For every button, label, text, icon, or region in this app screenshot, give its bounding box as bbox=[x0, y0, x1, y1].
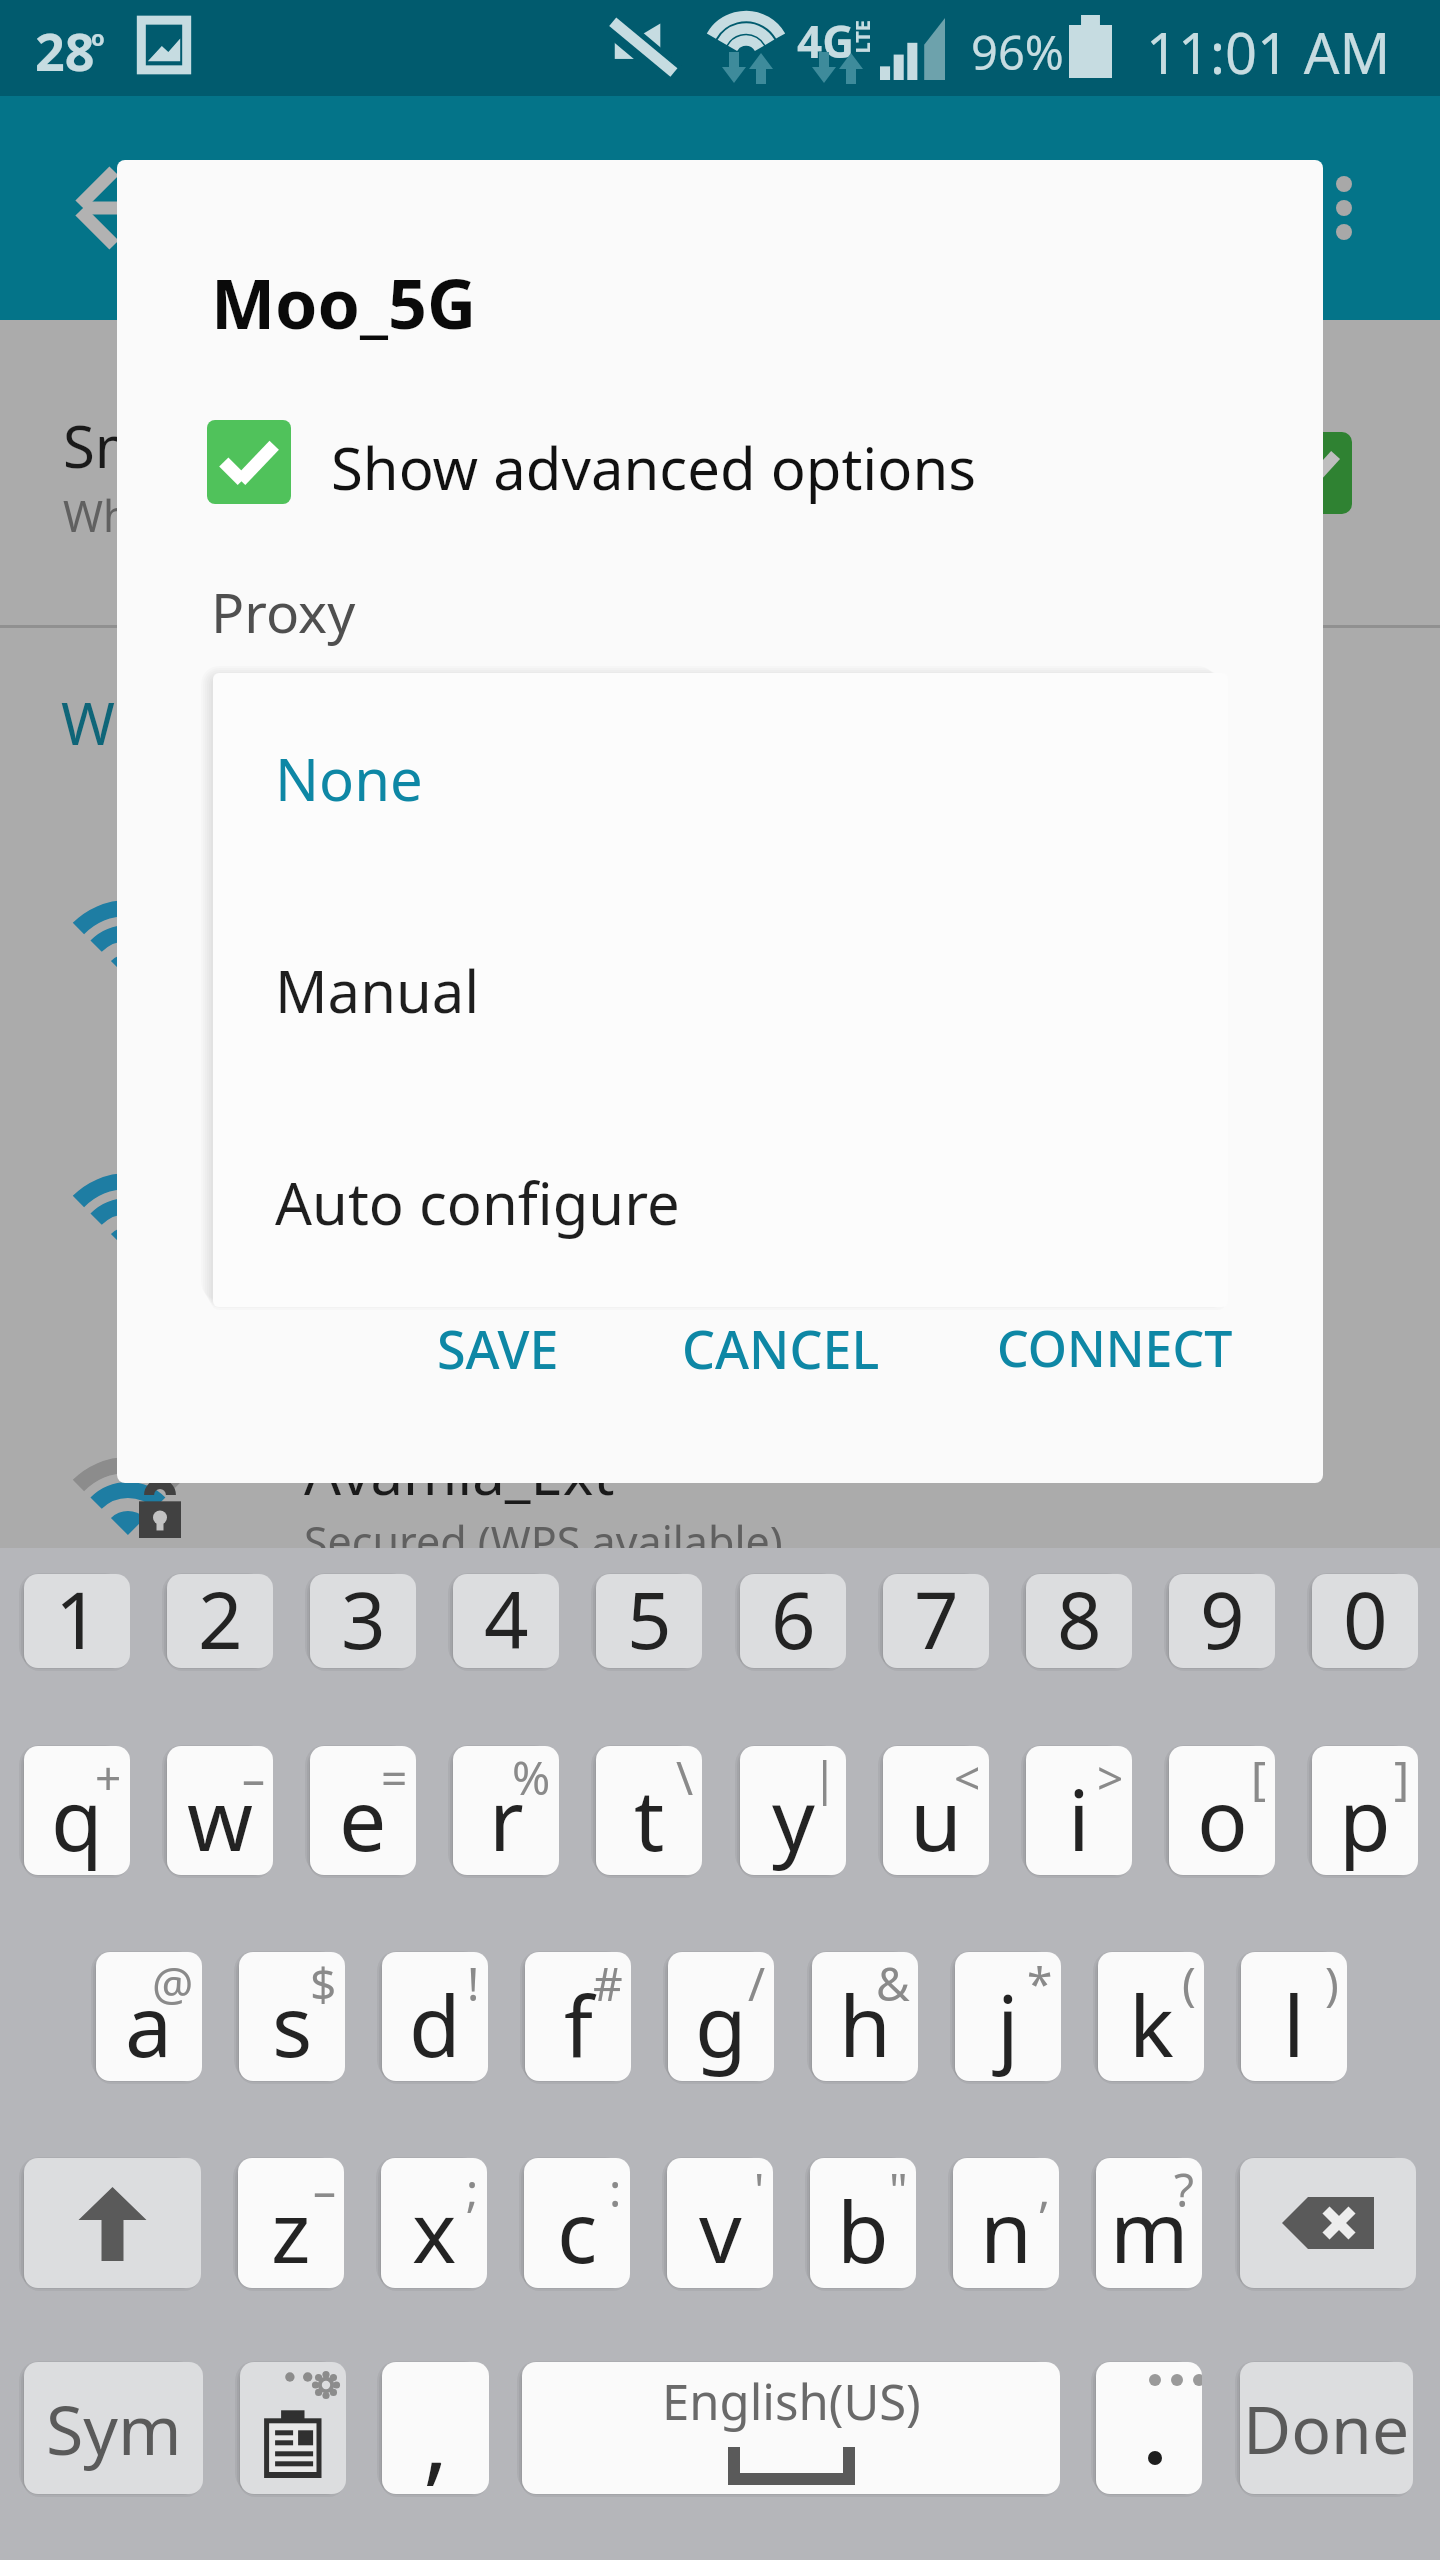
button[interactable]: 0 bbox=[1312, 1574, 1418, 1668]
button[interactable]: b bbox=[810, 2158, 916, 2288]
staticText: 0 bbox=[1343, 1574, 1388, 1660]
button[interactable]: Space bbox=[522, 2362, 1060, 2494]
button[interactable]: k bbox=[1098, 1952, 1204, 2081]
button[interactable]: q bbox=[24, 1746, 130, 1875]
button[interactable]: 3 bbox=[310, 1574, 416, 1668]
staticText: ! bbox=[467, 1952, 480, 2015]
button[interactable]: , bbox=[382, 2362, 489, 2494]
staticText: CANCEL bbox=[682, 1313, 880, 1384]
staticText: 11:01 AM bbox=[1146, 14, 1391, 90]
button[interactable]: n bbox=[953, 2158, 1059, 2288]
button[interactable]: 5 bbox=[596, 1574, 702, 1668]
staticText: g bbox=[695, 1967, 747, 2081]
button[interactable]: s bbox=[239, 1952, 345, 2081]
button[interactable]: Period bbox=[1096, 2362, 1202, 2494]
staticText: Manual bbox=[275, 951, 480, 1030]
staticText: v bbox=[699, 2173, 742, 2287]
staticText: i bbox=[1068, 1761, 1090, 1875]
staticText: r bbox=[489, 1761, 524, 1875]
staticText: k bbox=[1129, 1967, 1174, 2081]
staticText: 4G bbox=[797, 11, 855, 71]
button[interactable]: m bbox=[1096, 2158, 1202, 2288]
staticText: , bbox=[423, 2372, 449, 2494]
button[interactable]: Symbols bbox=[24, 2362, 203, 2494]
staticText: * bbox=[1027, 1952, 1053, 2015]
button[interactable]: Backspace bbox=[1240, 2158, 1416, 2288]
button[interactable] bbox=[0, 320, 1440, 620]
staticText: Proxy bbox=[211, 574, 356, 649]
button[interactable]: More options bbox=[1296, 160, 1392, 256]
staticText: SAVE bbox=[437, 1313, 559, 1384]
button[interactable]: None bbox=[213, 673, 1228, 885]
staticText: = bbox=[381, 1746, 408, 1809]
staticText: Secured (WPS available) bbox=[304, 1512, 783, 1571]
button[interactable]: 1 bbox=[24, 1574, 130, 1668]
staticText: | bbox=[812, 1746, 838, 1809]
button[interactable]: g bbox=[668, 1952, 774, 2081]
staticText: d bbox=[409, 1967, 461, 2081]
button[interactable]: e bbox=[310, 1746, 416, 1875]
button[interactable]: Done bbox=[1240, 2362, 1413, 2494]
staticText: + bbox=[95, 1746, 122, 1809]
staticText: 4 bbox=[484, 1574, 529, 1660]
button[interactable]: h bbox=[812, 1952, 918, 2081]
button[interactable]: z bbox=[238, 2158, 344, 2288]
staticText: Avamia_Ext bbox=[304, 1433, 615, 1512]
button[interactable]: y bbox=[740, 1746, 846, 1875]
button[interactable]: c bbox=[524, 2158, 630, 2288]
staticText: q bbox=[51, 1761, 103, 1875]
button[interactable]: SAVE bbox=[413, 1293, 583, 1403]
button[interactable]: u bbox=[883, 1746, 989, 1875]
button[interactable]: d bbox=[382, 1952, 488, 2081]
button[interactable]: Auto configure bbox=[213, 1097, 1228, 1307]
button[interactable]: Shift bbox=[24, 2158, 201, 2288]
button[interactable]: a bbox=[96, 1952, 202, 2081]
button[interactable]: Back bbox=[48, 160, 144, 256]
button[interactable]: CANCEL bbox=[673, 1293, 888, 1403]
button[interactable]: Manual bbox=[213, 885, 1228, 1097]
button[interactable]: 7 bbox=[883, 1574, 989, 1668]
staticText: 2 bbox=[198, 1574, 243, 1660]
staticText: ( bbox=[1182, 1952, 1196, 2015]
button[interactable]: x bbox=[381, 2158, 487, 2288]
button[interactable]: 9 bbox=[1169, 1574, 1275, 1668]
button[interactable]: 2 bbox=[167, 1574, 273, 1668]
staticText: LTE bbox=[848, 19, 875, 53]
staticText: o bbox=[1197, 1761, 1248, 1875]
button[interactable]: Show advanced options bbox=[193, 400, 1193, 520]
button[interactable]: f bbox=[525, 1952, 631, 2081]
staticText: ? bbox=[1174, 2158, 1194, 2221]
button[interactable]: i bbox=[1026, 1746, 1132, 1875]
button[interactable]: j bbox=[955, 1952, 1061, 2081]
button[interactable]: p bbox=[1312, 1746, 1418, 1875]
staticText: x bbox=[412, 2173, 457, 2287]
button[interactable] bbox=[0, 820, 1440, 1080]
button[interactable]: 8 bbox=[1026, 1574, 1132, 1668]
button[interactable]: 4 bbox=[453, 1574, 559, 1668]
staticText: 6 bbox=[771, 1574, 816, 1660]
staticText: e bbox=[339, 1761, 387, 1875]
staticText: / bbox=[748, 1952, 766, 2015]
button[interactable]: CONNECT bbox=[992, 1293, 1237, 1403]
button[interactable]: t bbox=[596, 1746, 702, 1875]
staticText: p bbox=[1339, 1761, 1391, 1875]
button[interactable]: o bbox=[1169, 1746, 1275, 1875]
button[interactable]: l bbox=[1241, 1952, 1347, 2081]
button[interactable] bbox=[0, 1095, 1440, 1355]
button[interactable]: w bbox=[167, 1746, 273, 1875]
button[interactable]: v bbox=[667, 2158, 773, 2288]
staticText: f bbox=[564, 1967, 593, 2081]
staticText: , bbox=[1038, 2158, 1051, 2221]
button[interactable]: 6 bbox=[740, 1574, 846, 1668]
staticText: 3 bbox=[341, 1574, 386, 1660]
button[interactable]: r bbox=[453, 1746, 559, 1875]
staticText: 5 bbox=[627, 1574, 672, 1660]
staticText: 28 bbox=[35, 15, 95, 86]
staticText: l bbox=[1283, 1967, 1305, 2081]
button[interactable] bbox=[0, 1375, 1440, 1548]
button[interactable]: Keyboard settings bbox=[240, 2362, 346, 2494]
staticText: \ bbox=[676, 1746, 694, 1809]
staticText: & bbox=[876, 1952, 910, 2015]
staticText: Smart network switch bbox=[63, 406, 655, 485]
